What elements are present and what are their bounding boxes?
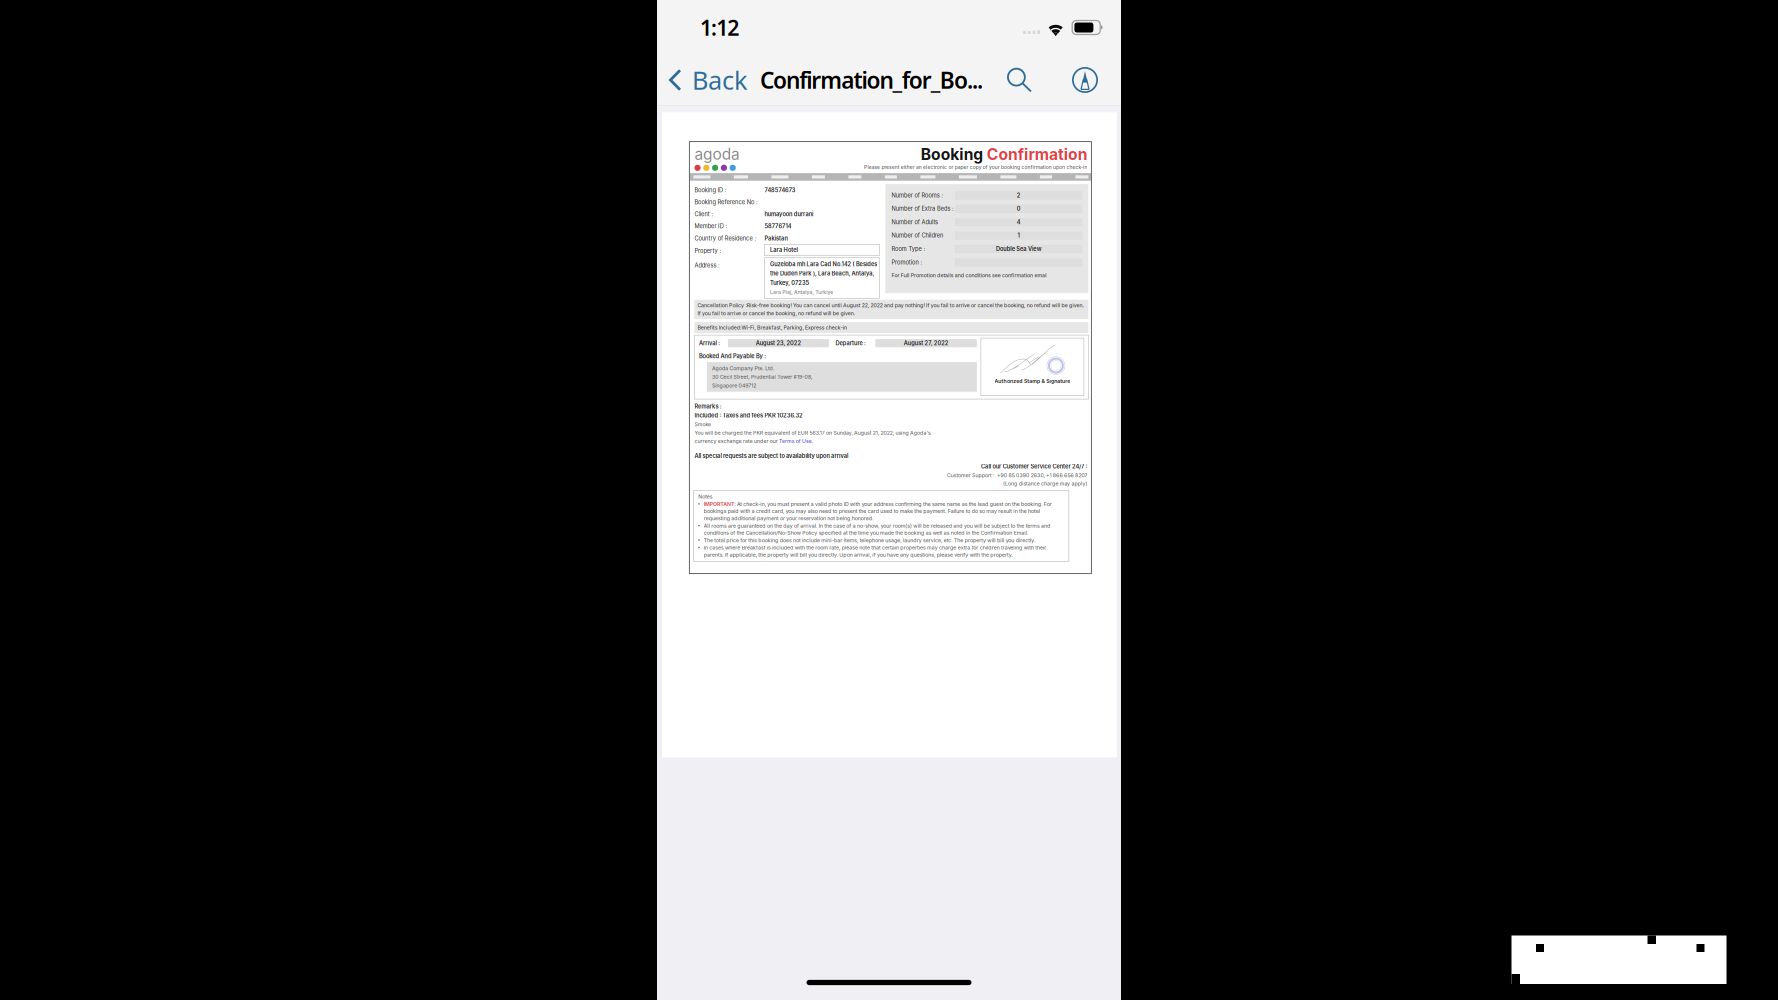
staticText: Address :: [704, 503, 780, 523]
staticText: 1:12: [700, 13, 739, 42]
button[interactable]: Back: [657, 58, 750, 102]
staticText: agoda: [704, 151, 840, 207]
staticText: Cancellation Policy :Risk-free booking! …: [713, 624, 1778, 642]
staticText: Pakistan: [914, 422, 984, 442]
button[interactable]: Confirmation_for_Booking page 1: [662, 112, 1117, 757]
staticText: Booking Reference No :: [704, 313, 894, 334]
button[interactable]: Search: [1000, 58, 1038, 102]
staticText: 748574673: [914, 277, 1007, 297]
staticText: humayoon durrani: [914, 349, 1061, 370]
staticText: Confirmation_for_Bo...: [760, 65, 983, 95]
staticText: Back: [692, 63, 748, 97]
staticText: Country of Residence :: [704, 422, 889, 442]
staticText: Lara Hotel: [931, 456, 1015, 477]
button[interactable]: Markup: [1069, 58, 1101, 102]
staticText: Member ID :: [704, 385, 802, 406]
staticText: 58776714: [914, 385, 995, 406]
staticText: the Duden Park ), Lara Beach, Antalya,: [931, 527, 1244, 548]
staticText: Guzeloba mh Lara Cad No.142 ( Besides: [931, 499, 1253, 520]
staticText: Benefits Included:Wi-Fi, Breakfast, Park…: [713, 690, 1162, 709]
staticText: If you fail to arrive or cancel the book…: [713, 647, 1186, 666]
staticText: Booking ID :: [704, 277, 800, 298]
staticText: Client :: [704, 349, 760, 370]
staticText: Turkey, 07235: [931, 555, 1049, 576]
